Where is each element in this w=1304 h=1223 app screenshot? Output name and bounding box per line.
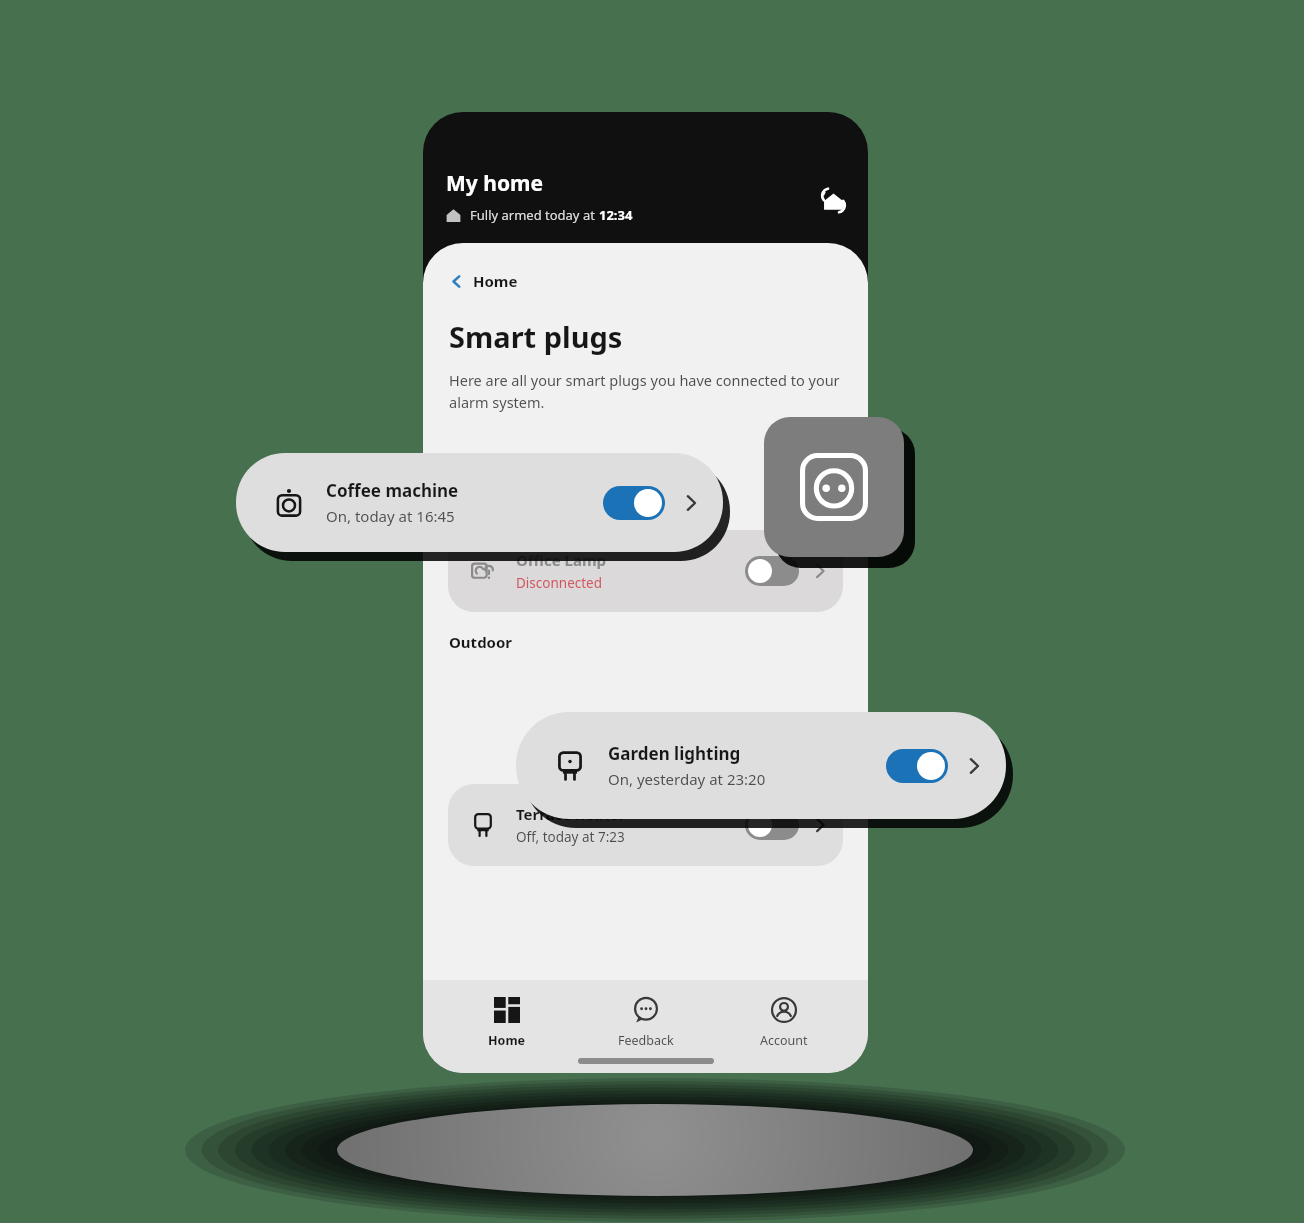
button[interactable]: Feedback (591, 993, 701, 1053)
button[interactable]: Off (745, 556, 799, 586)
staticText: Smart plugs (449, 317, 623, 356)
staticText: On, today at 16:45 (326, 506, 455, 526)
button[interactable]: Office Lamp (448, 530, 843, 612)
staticText: Home (473, 271, 518, 291)
staticText: Feedback (618, 1032, 674, 1049)
staticText: Disconnected (516, 574, 603, 592)
button[interactable]: Open Terrace heater (811, 816, 829, 834)
button[interactable]: Open Coffee machine (681, 493, 701, 513)
button[interactable]: On (603, 486, 665, 520)
staticText: Home (488, 1032, 526, 1049)
button[interactable]: Home (452, 993, 562, 1053)
button[interactable]: Open Garden lighting (964, 756, 984, 776)
staticText: Outdoor (449, 632, 513, 652)
staticText: Garden lighting (608, 742, 741, 765)
button[interactable]: Home (445, 267, 522, 295)
button[interactable]: Garden lighting (516, 712, 1006, 819)
staticText: Off, today at 7:23 (516, 828, 625, 846)
staticText: Account (760, 1032, 808, 1049)
button[interactable]: Switch home (815, 182, 851, 218)
button[interactable]: Off (745, 810, 799, 840)
staticText: 12:34 (599, 206, 633, 224)
button[interactable]: On (886, 749, 948, 783)
button[interactable]: Coffee machine (236, 453, 723, 552)
button[interactable]: Account (729, 993, 839, 1053)
button[interactable]: Terrace heater (448, 784, 843, 866)
button[interactable]: Open Office Lamp (811, 562, 829, 580)
staticText: On, yesterday at 23:20 (608, 769, 766, 789)
staticText: Fully armed today at (470, 206, 599, 224)
button[interactable]: Smart plug (764, 417, 904, 557)
staticText: My home (446, 169, 544, 198)
staticText: Office Lamp (516, 550, 607, 570)
staticText: Terrace heater (516, 804, 626, 824)
staticText: Here are all your smart plugs you have c… (449, 370, 840, 412)
staticText: Coffee machine (326, 479, 459, 502)
